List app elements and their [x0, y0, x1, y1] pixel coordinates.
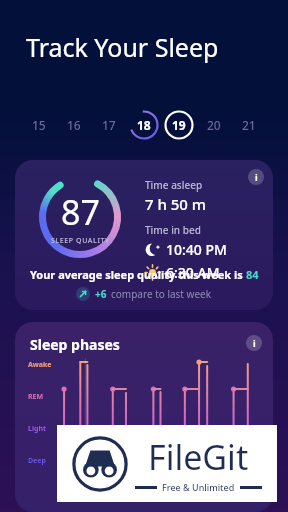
staticText: 17 [102, 117, 116, 133]
staticText: 6:30 AM [166, 263, 220, 282]
staticText: Awake [28, 360, 52, 370]
staticText: i [253, 337, 256, 349]
button[interactable]: 18 [126, 108, 161, 142]
staticText: +6 [95, 287, 107, 301]
button[interactable]: 16 [56, 108, 91, 142]
staticText: 84 [246, 267, 259, 282]
button[interactable]: 19 [161, 108, 196, 142]
staticText: Time asleep [145, 178, 203, 192]
staticText: FileGit [148, 434, 249, 480]
button[interactable]: 17 [91, 108, 126, 142]
button[interactable]: Info [15, 160, 273, 310]
button[interactable]: 20 [196, 108, 231, 142]
staticText: 21 [242, 117, 256, 133]
staticText: 19 [172, 117, 186, 133]
staticText: Free & Unlimited [162, 481, 235, 493]
staticText: Your average sleep quality this week is [30, 267, 246, 282]
staticText: Time in bed [145, 223, 201, 237]
staticText: i [255, 171, 258, 183]
button[interactable]: 15 [22, 108, 56, 142]
button[interactable]: Sleep phases [15, 322, 273, 512]
staticText: 16 [67, 117, 81, 133]
staticText: Light [28, 424, 47, 434]
button[interactable]: 21 [231, 108, 266, 142]
staticText: 10:40 PM [166, 240, 227, 259]
staticText: REM [28, 392, 44, 402]
staticText: 87 [61, 189, 100, 235]
button[interactable]: Info [246, 335, 262, 351]
staticText: 7 h 50 m [145, 194, 207, 214]
button[interactable]: Info [248, 169, 264, 185]
staticText: 18 [137, 117, 151, 133]
staticText: Deep [28, 456, 46, 466]
staticText: compare to last week [111, 287, 212, 301]
staticText: Track Your Sleep [26, 30, 219, 64]
staticText: Sleep phases [30, 335, 120, 354]
staticText: 20 [207, 117, 221, 133]
staticText: SLEEP QUALITY [51, 236, 110, 246]
staticText: 15 [32, 117, 46, 133]
